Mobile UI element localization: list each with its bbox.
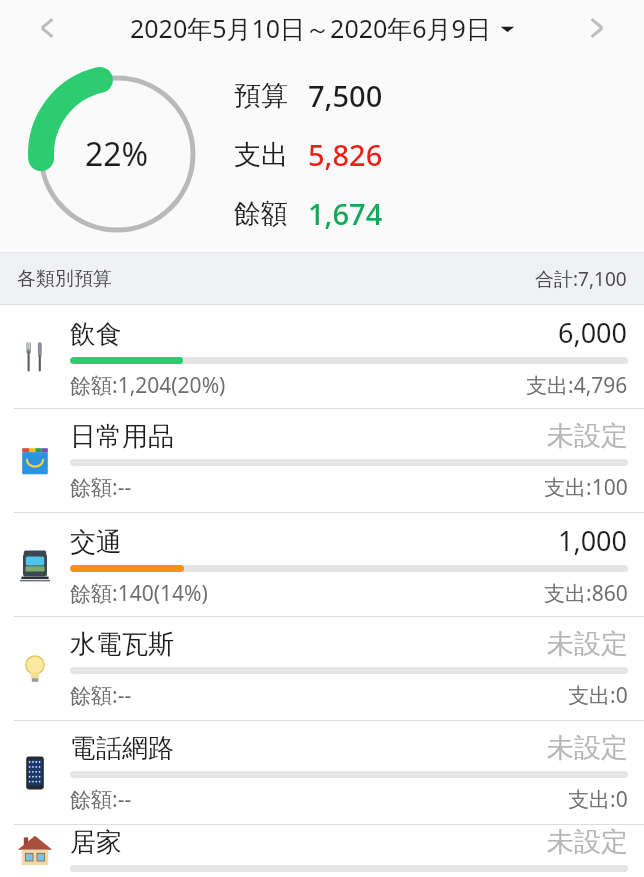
staticText: 日常用品 — [70, 420, 174, 453]
button[interactable]: 水電瓦斯 — [0, 617, 644, 720]
staticText: 未設定 — [547, 419, 628, 453]
staticText: 餘額:-- — [70, 681, 132, 710]
staticText: 1,000 — [558, 522, 628, 559]
staticText: 未設定 — [547, 825, 628, 859]
staticText: 22% — [85, 132, 149, 176]
staticText: 支出:100 — [544, 473, 628, 502]
staticText: 支出:860 — [544, 579, 628, 608]
button[interactable]: Previous period — [0, 0, 96, 56]
button[interactable]: 飲食 — [0, 305, 644, 408]
staticText: 支出:0 — [568, 681, 628, 710]
staticText: 各類別預算 — [17, 267, 112, 291]
staticText: 餘額 — [234, 197, 288, 231]
staticText: 預算 — [234, 79, 288, 113]
staticText: 未設定 — [547, 627, 628, 661]
staticText: 餘額:-- — [70, 785, 132, 814]
staticText: 餘額:140(14%) — [70, 579, 208, 608]
button[interactable]: 居家 — [0, 825, 644, 877]
staticText: 餘額:-- — [70, 473, 132, 502]
staticText: 飲食 — [70, 318, 122, 351]
staticText: 1,674 — [308, 194, 383, 233]
button[interactable]: 2020年5月10日～2020年6月9日 — [96, 0, 548, 56]
staticText: 未設定 — [547, 731, 628, 765]
button[interactable]: 日常用品 — [0, 409, 644, 512]
staticText: 支出:4,796 — [526, 371, 628, 400]
button[interactable]: 交通 — [0, 513, 644, 616]
staticText: 餘額:1,204(20%) — [70, 371, 226, 400]
staticText: 2020年5月10日～2020年6月9日 — [130, 11, 491, 45]
staticText: 7,500 — [308, 76, 383, 115]
staticText: 居家 — [70, 826, 122, 859]
staticText: 水電瓦斯 — [70, 628, 174, 661]
button[interactable]: 電話網路 — [0, 721, 644, 824]
staticText: 6,000 — [558, 314, 628, 351]
staticText: 電話網路 — [70, 732, 174, 765]
staticText: 5,826 — [308, 135, 383, 174]
staticText: 合計:7,100 — [535, 266, 627, 292]
staticText: 交通 — [70, 526, 122, 559]
staticText: 支出 — [234, 138, 288, 172]
staticText: 支出:0 — [568, 785, 628, 814]
button[interactable]: Next period — [548, 0, 644, 56]
